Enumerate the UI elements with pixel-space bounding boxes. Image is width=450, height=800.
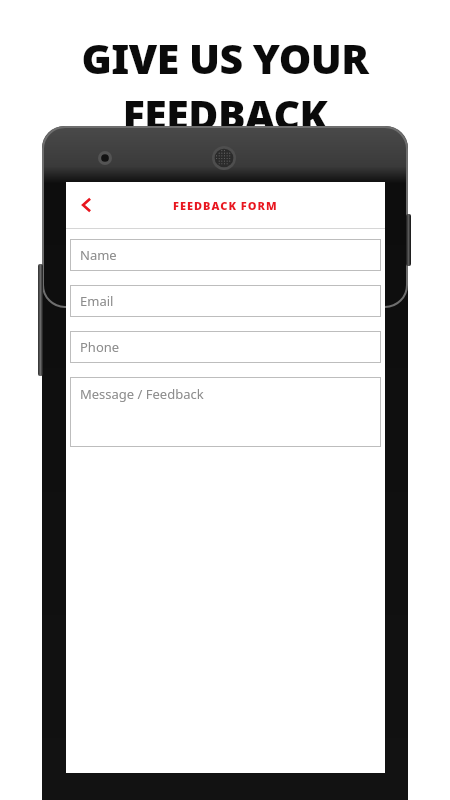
button[interactable]: Message / Feedback <box>70 377 381 447</box>
button[interactable]: Phone <box>70 331 381 363</box>
button[interactable]: Back <box>66 184 108 226</box>
staticText: Phone <box>80 338 120 356</box>
staticText: FEEDBACK FORM <box>173 198 278 213</box>
staticText: GIVE US YOUR FEEDBACK <box>0 30 450 142</box>
staticText: Message / Feedback <box>80 385 204 403</box>
staticText: Email <box>80 292 114 310</box>
button[interactable]: Email <box>70 285 381 317</box>
staticText: Name <box>80 246 117 264</box>
button[interactable]: Name <box>70 239 381 271</box>
